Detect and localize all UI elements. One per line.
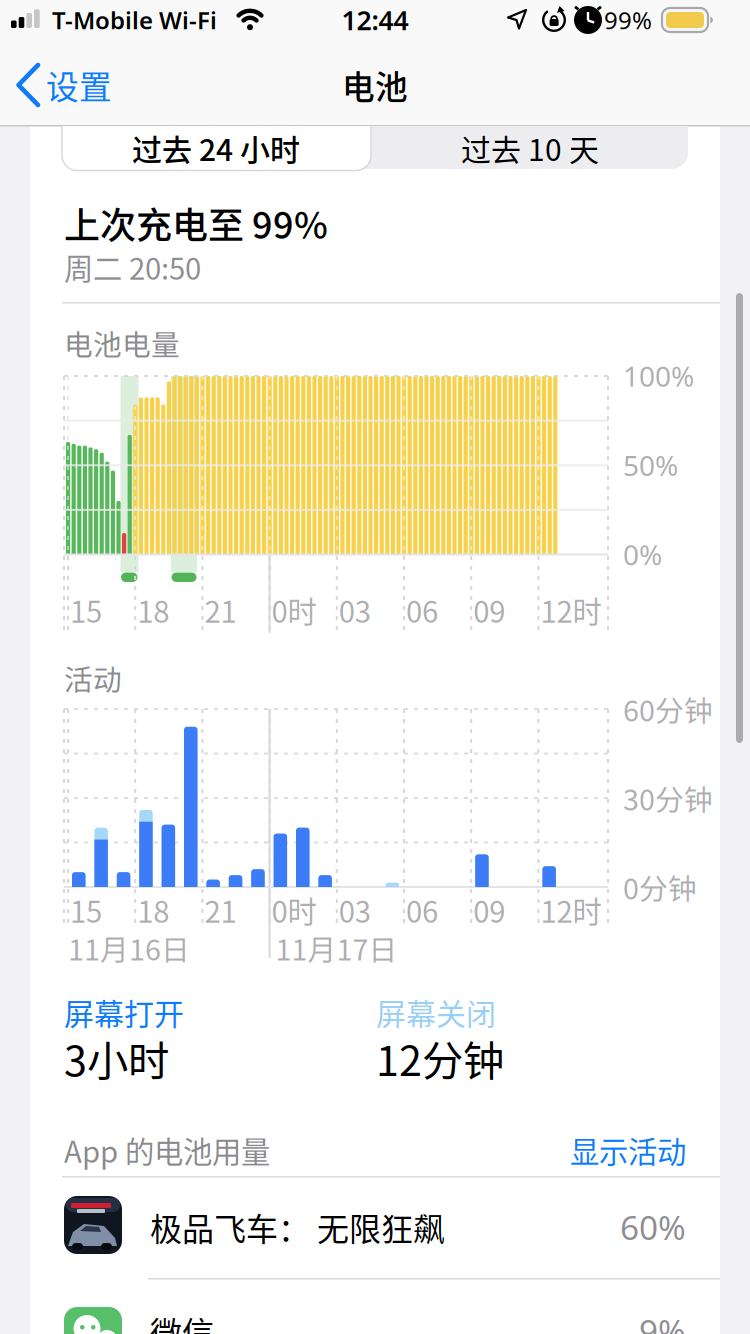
staticText: 09 [473, 589, 505, 631]
staticText: 18 [137, 589, 169, 631]
staticText: 21 [204, 589, 236, 631]
staticText: 18 [137, 889, 169, 931]
staticText: 12:44 [341, 2, 408, 38]
staticText: 03 [339, 889, 371, 931]
staticText: 12时 [540, 889, 601, 931]
staticText: 50% [623, 447, 678, 484]
staticText: 21 [204, 889, 236, 931]
staticText: 微信 [150, 1308, 214, 1334]
staticText: 06 [406, 589, 438, 631]
staticText: 显示活动 [570, 1129, 686, 1171]
staticText: 11月16日 [68, 927, 190, 969]
staticText: 30分钟 [623, 777, 713, 819]
staticText: 60% [620, 1205, 686, 1249]
staticText: 12分钟 [376, 1028, 504, 1088]
staticText: 过去 10 天 [461, 126, 599, 170]
staticText: 过去 24 小时 [132, 126, 300, 170]
staticText: 60分钟 [623, 688, 713, 730]
staticText: 上次充电至 99% [64, 197, 328, 249]
staticText: 设置 [46, 61, 112, 109]
staticText: 0分钟 [623, 866, 697, 908]
staticText: 周二 20:50 [64, 246, 201, 288]
staticText: 0时 [272, 589, 317, 631]
staticText: 11月17日 [276, 927, 398, 969]
staticText: 09 [473, 889, 505, 931]
staticText: 0时 [272, 889, 317, 931]
staticText: 活动 [64, 657, 122, 699]
staticText: 屏幕关闭 [376, 990, 496, 1034]
staticText: 03 [339, 589, 371, 631]
staticText: 100% [623, 357, 694, 395]
staticText: 9% [639, 1309, 686, 1334]
staticText: App 的电池用量 [64, 1129, 270, 1171]
staticText: 15 [70, 889, 102, 931]
staticText: 12时 [540, 589, 601, 631]
staticText: 屏幕打开 [64, 990, 184, 1034]
staticText: 15 [70, 589, 102, 631]
staticText: 99% [604, 4, 652, 36]
staticText: 06 [406, 889, 438, 931]
staticText: 0% [623, 536, 662, 573]
staticText: 电池电量 [64, 322, 180, 364]
staticText: 3小时 [64, 1028, 169, 1088]
staticText: T-Mobile Wi-Fi [52, 4, 217, 36]
staticText: 电池 [342, 61, 408, 109]
staticText: 极品飞车： 无限狂飙 [150, 1204, 445, 1250]
